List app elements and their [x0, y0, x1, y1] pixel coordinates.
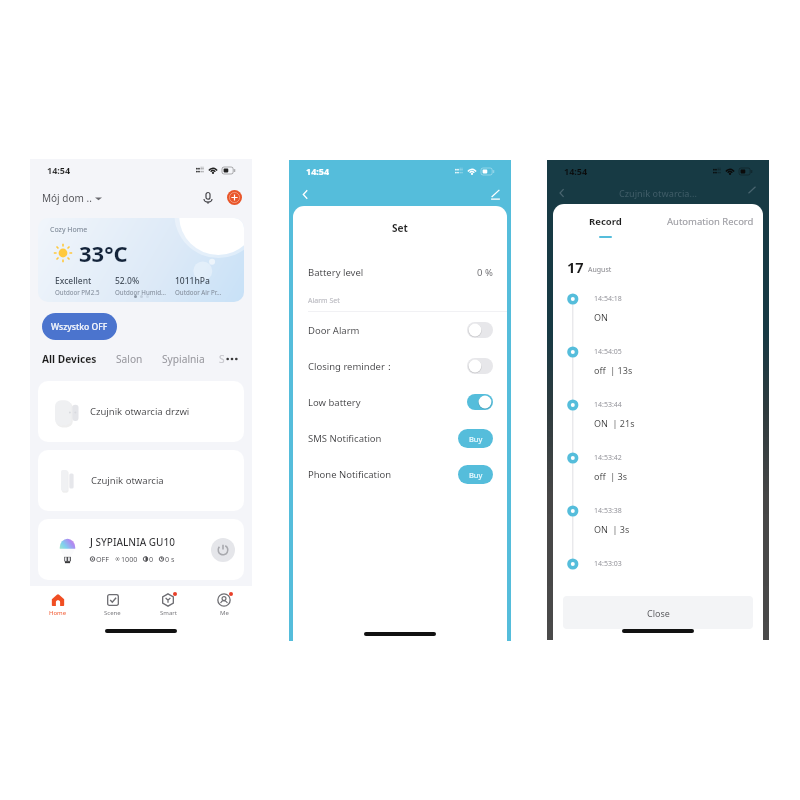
- staticText: OFF: [96, 554, 110, 564]
- staticText: August: [588, 265, 612, 275]
- button[interactable]: Automation Record: [658, 215, 763, 228]
- button[interactable]: Buy: [458, 429, 493, 448]
- staticText: Phone Notification: [308, 468, 392, 481]
- staticText: Me: [220, 609, 229, 617]
- staticText: 0 s: [165, 554, 175, 564]
- staticText: 17: [567, 257, 584, 277]
- staticText: Sypialnia: [162, 352, 205, 366]
- staticText: Set: [293, 221, 507, 235]
- staticText: Cozy Home: [50, 225, 88, 235]
- button[interactable]: Cozy Home: [38, 218, 244, 302]
- staticText: 33°C: [79, 238, 128, 268]
- button[interactable]: Close: [563, 596, 753, 629]
- staticText: Smart: [160, 609, 177, 617]
- staticText: Czujnik otwarcia: [91, 474, 164, 487]
- staticText: Low battery: [308, 396, 361, 409]
- staticText: Battery level: [308, 266, 364, 279]
- button[interactable]: Wszystko OFF: [42, 313, 117, 340]
- button[interactable]: J SYPIALNIA GU10: [38, 519, 244, 580]
- staticText: ON | 3s: [594, 523, 630, 535]
- staticText: All Devices: [42, 352, 97, 366]
- button[interactable]: Phone Notification: [293, 456, 507, 492]
- button[interactable]: Czujnik otwarcia drzwi: [38, 381, 244, 442]
- staticText: 14:54: [47, 164, 71, 176]
- staticText: 14:54:05: [594, 347, 622, 357]
- staticText: Close: [647, 607, 670, 619]
- staticText: Scene: [104, 609, 121, 617]
- staticText: Excellent: [55, 275, 92, 287]
- staticText: Record: [589, 215, 622, 228]
- button[interactable]: Low battery: [293, 384, 507, 420]
- staticText: Czujnik otwarcia...: [619, 187, 697, 199]
- button[interactable]: Closing reminder：: [293, 348, 507, 384]
- staticText: Automation Record: [667, 215, 754, 228]
- staticText: Buy: [469, 470, 483, 480]
- staticText: Closing reminder：: [308, 360, 395, 373]
- button[interactable]: [467, 322, 493, 338]
- button[interactable]: Salon: [116, 352, 143, 366]
- staticText: 14:53:42: [594, 453, 622, 463]
- staticText: 0: [149, 554, 154, 564]
- staticText: 14:53:38: [594, 506, 622, 516]
- button[interactable]: Add device: [227, 190, 242, 205]
- button[interactable]: Voice: [199, 189, 217, 207]
- staticText: 14:53:44: [594, 400, 622, 410]
- staticText: Mój dom ..: [42, 191, 92, 205]
- button[interactable]: [467, 358, 493, 374]
- staticText: Home: [49, 609, 67, 617]
- staticText: 0 %: [477, 266, 493, 279]
- button[interactable]: Buy: [458, 465, 493, 484]
- button[interactable]: Door Alarm: [293, 312, 507, 348]
- staticText: ON: [594, 311, 608, 323]
- staticText: Outdoor Humid...: [115, 288, 166, 296]
- staticText: 14:54: [306, 165, 330, 177]
- button[interactable]: [467, 394, 493, 410]
- button[interactable]: Mój dom ..: [40, 189, 104, 207]
- button[interactable]: Back: [297, 186, 313, 202]
- staticText: off | 13s: [594, 364, 633, 376]
- staticText: 52.0%: [115, 275, 140, 287]
- staticText: ON | 21s: [594, 417, 635, 429]
- button[interactable]: All Devices: [42, 352, 97, 366]
- button[interactable]: Battery level: [293, 254, 507, 290]
- staticText: SMS Notification: [308, 432, 382, 445]
- button[interactable]: Czujnik otwarcia: [38, 450, 244, 511]
- staticText: Outdoor Air Pr...: [175, 288, 222, 296]
- button[interactable]: Back: [555, 186, 569, 200]
- staticText: S: [219, 352, 225, 366]
- button[interactable]: Me: [196, 586, 252, 624]
- staticText: Salon: [116, 352, 143, 366]
- staticText: 14:54: [564, 165, 588, 177]
- staticText: J SYPIALNIA GU10: [90, 535, 175, 549]
- staticText: Door Alarm: [308, 324, 360, 337]
- staticText: off | 3s: [594, 470, 628, 482]
- staticText: 1000: [121, 554, 138, 564]
- button[interactable]: Scene: [85, 586, 140, 624]
- button[interactable]: Home: [30, 586, 85, 624]
- button[interactable]: Power toggle: [211, 538, 235, 562]
- staticText: Czujnik otwarcia drzwi: [90, 405, 190, 418]
- button[interactable]: Edit: [487, 186, 503, 202]
- staticText: Buy: [469, 434, 483, 444]
- staticText: 14:54:18: [594, 294, 622, 304]
- staticText: 14:53:03: [594, 559, 622, 569]
- button[interactable]: Edit: [747, 186, 761, 200]
- button[interactable]: Smart: [140, 586, 196, 624]
- button[interactable]: More: [225, 352, 239, 366]
- button[interactable]: Record: [553, 215, 658, 238]
- button[interactable]: SMS Notification: [293, 420, 507, 456]
- button[interactable]: S: [219, 352, 225, 366]
- button[interactable]: Sypialnia: [162, 352, 205, 366]
- staticText: Outdoor PM2.5: [55, 288, 100, 296]
- staticText: 1011hPa: [175, 275, 210, 287]
- staticText: Wszystko OFF: [51, 321, 108, 333]
- staticText: Alarm Set: [308, 296, 340, 306]
